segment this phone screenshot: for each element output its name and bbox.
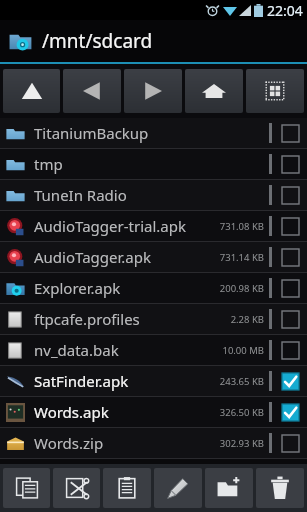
staticText: 22:04 <box>267 1 303 20</box>
button[interactable]: tmp <box>0 149 307 179</box>
staticText: Words.apk <box>34 402 109 422</box>
button[interactable]: Select tmp <box>279 153 301 175</box>
button[interactable]: Select AudioTagger.apk <box>279 246 301 268</box>
button[interactable]: Select Explorer.apk <box>279 277 301 299</box>
staticText: nv_data.bak <box>34 340 119 360</box>
button[interactable]: Back <box>63 69 121 113</box>
staticText: 302.93 KB <box>219 437 264 450</box>
button[interactable]: Select nv_data.bak <box>279 339 301 361</box>
button[interactable]: Home <box>185 69 243 113</box>
staticText: 731.08 KB <box>219 220 264 233</box>
button[interactable]: Copy <box>3 468 50 508</box>
button[interactable]: Select TuneIn Radio <box>279 184 301 206</box>
staticText: AudioTagger.apk <box>34 247 151 267</box>
button[interactable]: SatFinder.apk <box>0 366 307 396</box>
staticText: 243.65 KB <box>219 375 264 388</box>
button[interactable]: Up <box>3 69 60 113</box>
staticText: TitaniumBackup <box>34 123 149 143</box>
button[interactable]: Delete <box>256 468 304 508</box>
button[interactable]: Select ftpcafe.profiles <box>279 308 301 330</box>
button[interactable]: AudioTagger.apk <box>0 242 307 272</box>
button[interactable]: Select AudioTagger-trial.apk <box>279 215 301 237</box>
staticText: 326.50 KB <box>219 406 264 419</box>
button[interactable]: ftpcafe.profiles <box>0 304 307 334</box>
staticText: ftpcafe.profiles <box>34 309 140 329</box>
button[interactable]: Select mode <box>246 69 304 113</box>
staticText: Words.zip <box>34 433 104 453</box>
button[interactable]: TitaniumBackup <box>0 118 307 148</box>
button[interactable]: TuneIn Radio <box>0 180 307 210</box>
staticText: Explorer.apk <box>34 278 121 298</box>
button[interactable]: Select SatFinder.apk <box>279 370 301 392</box>
button[interactable]: Rename <box>154 468 202 508</box>
button[interactable]: Explorer.apk <box>0 273 307 303</box>
staticText: tmp <box>34 154 63 174</box>
button[interactable]: Words.apk <box>0 397 307 427</box>
button[interactable]: Paste <box>103 468 151 508</box>
button[interactable]: Forward <box>124 69 182 113</box>
button[interactable]: Words.zip <box>0 428 307 458</box>
button[interactable]: Select Words.apk <box>279 401 301 423</box>
button[interactable]: nv_data.bak <box>0 335 307 365</box>
staticText: SatFinder.apk <box>34 371 129 391</box>
staticText: 731.14 KB <box>219 251 264 264</box>
button[interactable]: New folder <box>205 468 253 508</box>
button[interactable]: Cut <box>53 468 100 508</box>
button[interactable]: AudioTagger-trial.apk <box>0 211 307 241</box>
staticText: TuneIn Radio <box>34 185 127 205</box>
button[interactable]: Select Words.zip <box>279 432 301 454</box>
staticText: 2.28 KB <box>230 313 264 326</box>
staticText: 200.98 KB <box>219 282 264 295</box>
staticText: 10.00 MB <box>222 344 264 357</box>
staticText: AudioTagger-trial.apk <box>34 216 186 236</box>
staticText: /mnt/sdcard <box>42 28 153 54</box>
button[interactable]: Select TitaniumBackup <box>279 122 301 144</box>
